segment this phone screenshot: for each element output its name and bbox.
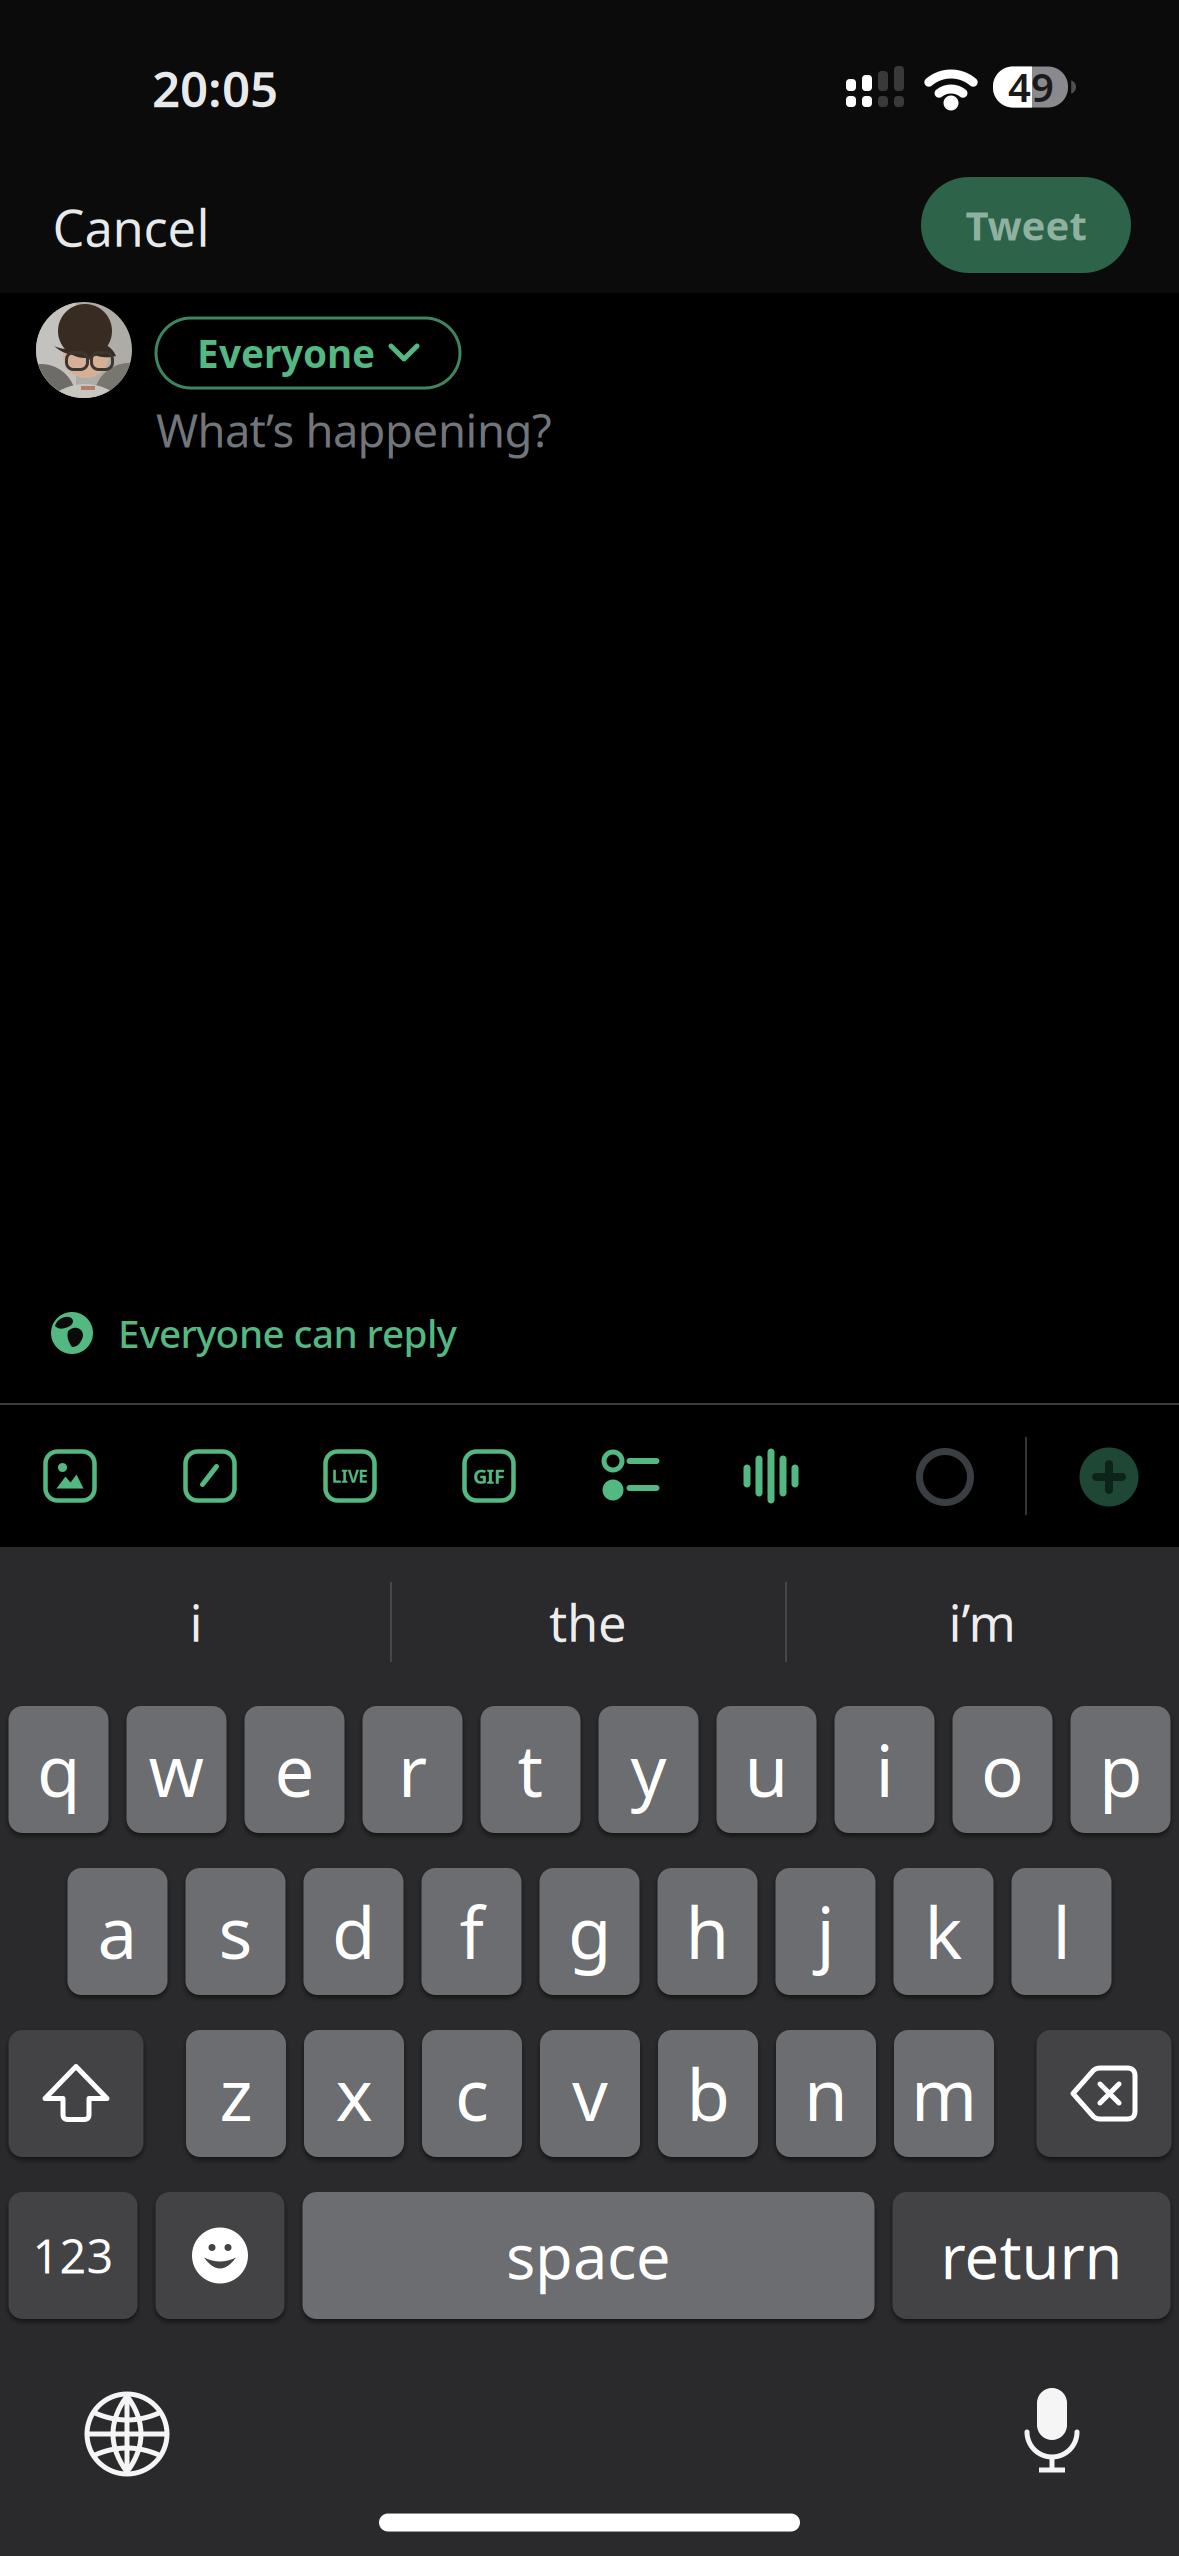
button[interactable]: w (126, 1706, 226, 1833)
staticText: m (911, 2047, 977, 2140)
staticText: t (517, 1723, 543, 1816)
button[interactable]: p (1070, 1706, 1170, 1833)
staticText: i (875, 1723, 893, 1816)
button[interactable]: Go Live (325, 1451, 374, 1500)
staticText: 20:05 (152, 55, 278, 121)
button[interactable]: l (1011, 1868, 1111, 1995)
staticText: p (1099, 1723, 1142, 1816)
staticText: Cancel (52, 193, 209, 261)
button[interactable]: a (67, 1868, 167, 1995)
staticText: y (630, 1723, 666, 1816)
button[interactable]: s (185, 1868, 285, 1995)
button[interactable]: Drafts (185, 1451, 234, 1500)
button[interactable]: i’m (797, 1567, 1167, 1677)
staticText: 49 (1008, 60, 1054, 113)
button[interactable]: z (186, 2030, 286, 2157)
staticText: v (572, 2047, 608, 2140)
staticText: n (804, 2047, 848, 2140)
button[interactable]: space (302, 2192, 874, 2319)
staticText: b (686, 2047, 729, 2140)
button[interactable]: Poll (602, 1451, 660, 1501)
staticText: return (940, 2215, 1122, 2296)
button[interactable]: b (658, 2030, 758, 2157)
button[interactable]: return (892, 2192, 1170, 2319)
staticText: i (189, 1588, 202, 1656)
staticText: o (981, 1723, 1024, 1816)
button[interactable]: Everyone can reply (51, 1312, 461, 1354)
button[interactable]: m (894, 2030, 994, 2157)
button[interactable]: o (952, 1706, 1052, 1833)
button[interactable]: x (304, 2030, 404, 2157)
staticText: GIF (473, 1463, 505, 1489)
staticText: f (459, 1885, 483, 1978)
button[interactable]: Cancel (52, 193, 209, 261)
button[interactable]: Add another Tweet (1079, 1447, 1138, 1506)
staticText: space (506, 2215, 671, 2296)
staticText: h (685, 1885, 729, 1978)
staticText: l (1052, 1885, 1070, 1978)
button[interactable]: u (716, 1706, 816, 1833)
button[interactable]: d (303, 1868, 403, 1995)
button[interactable]: r (362, 1706, 462, 1833)
button[interactable]: f (421, 1868, 521, 1995)
button[interactable]: v (540, 2030, 640, 2157)
button[interactable]: c (422, 2030, 522, 2157)
button[interactable]: j (775, 1868, 875, 1995)
button[interactable]: Delete (1036, 2030, 1171, 2157)
staticText: s (218, 1885, 252, 1978)
staticText: e (274, 1723, 314, 1816)
staticText: Everyone (197, 327, 375, 379)
button[interactable]: h (657, 1868, 757, 1995)
button[interactable]: Dictation (1012, 2387, 1092, 2473)
button[interactable]: Photos (45, 1451, 94, 1500)
staticText: What’s happening? (156, 400, 552, 460)
staticText: j (816, 1885, 834, 1978)
button[interactable]: y (598, 1706, 698, 1833)
button[interactable]: 123 (8, 2192, 137, 2319)
staticText: x (335, 2047, 372, 2140)
staticText: q (37, 1723, 80, 1816)
staticText: i’m (948, 1588, 1015, 1656)
button[interactable]: GIF (464, 1451, 513, 1500)
staticText: d (332, 1885, 375, 1978)
staticText: a (97, 1885, 137, 1978)
button[interactable]: t (480, 1706, 580, 1833)
button[interactable]: i (11, 1567, 381, 1677)
button[interactable]: Voice (743, 1448, 798, 1503)
button[interactable]: q (8, 1706, 108, 1833)
button[interactable]: k (893, 1868, 993, 1995)
button[interactable]: Everyone (156, 318, 460, 388)
staticText: k (924, 1885, 962, 1978)
staticText: z (219, 2047, 252, 2140)
button[interactable]: the (403, 1567, 773, 1677)
staticText: 123 (32, 2224, 113, 2286)
button[interactable]: Next keyboard (87, 2394, 167, 2474)
staticText: LIVE (332, 1464, 368, 1487)
button[interactable]: i (834, 1706, 934, 1833)
staticText: Tweet (965, 198, 1086, 251)
button[interactable]: g (539, 1868, 639, 1995)
staticText: g (568, 1885, 611, 1978)
button[interactable]: Tweet (921, 177, 1131, 273)
button[interactable]: n (776, 2030, 876, 2157)
button[interactable]: e (244, 1706, 344, 1833)
staticText: u (744, 1723, 788, 1816)
staticText: Everyone can reply (118, 1307, 456, 1359)
button[interactable]: Shift (8, 2030, 143, 2157)
button[interactable]: Emoji (155, 2192, 284, 2319)
staticText: r (398, 1723, 427, 1816)
staticText: c (455, 2047, 489, 2140)
staticText: w (148, 1723, 204, 1816)
staticText: the (549, 1588, 627, 1656)
